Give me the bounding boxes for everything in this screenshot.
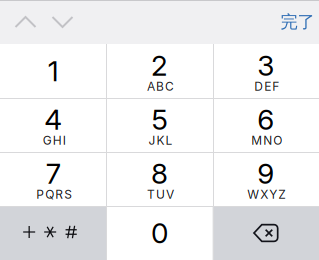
staticText: 8 [151, 157, 168, 190]
staticText: ABC [147, 79, 174, 94]
button[interactable]: Next field [42, 0, 82, 44]
staticText: PQRS [36, 187, 72, 202]
button[interactable]: 3 [213, 44, 319, 98]
staticText: 3 [257, 49, 274, 82]
staticText: 2 [151, 49, 168, 82]
button[interactable]: 6 [213, 98, 319, 152]
button[interactable]: 5 [106, 98, 213, 152]
staticText: WXYZ [247, 187, 286, 202]
button[interactable]: Previous field [0, 0, 44, 44]
button[interactable]: Plus, asterisk and hash [0, 206, 106, 260]
staticText: 完了 [280, 11, 314, 33]
button[interactable]: 9 [213, 152, 319, 206]
button[interactable]: 1 [0, 44, 106, 98]
staticText: 5 [151, 103, 167, 136]
staticText: DEF [254, 79, 279, 94]
staticText: JKL [148, 133, 172, 148]
button[interactable]: Delete [213, 206, 319, 260]
staticText: 4 [44, 103, 62, 136]
staticText: 1 [48, 54, 59, 88]
staticText: 0 [151, 216, 168, 250]
button[interactable]: 7 [0, 152, 106, 206]
staticText: MNO [251, 133, 282, 148]
button[interactable]: 0 [106, 206, 213, 260]
button[interactable]: 2 [106, 44, 213, 98]
button[interactable]: 8 [106, 152, 213, 206]
button[interactable]: 完了 [262, 0, 319, 44]
staticText: GHI [43, 133, 66, 148]
staticText: TUV [147, 187, 174, 202]
button[interactable]: 4 [0, 98, 106, 152]
staticText: 9 [257, 157, 274, 190]
staticText: 6 [257, 103, 274, 136]
staticText: 7 [46, 157, 61, 190]
